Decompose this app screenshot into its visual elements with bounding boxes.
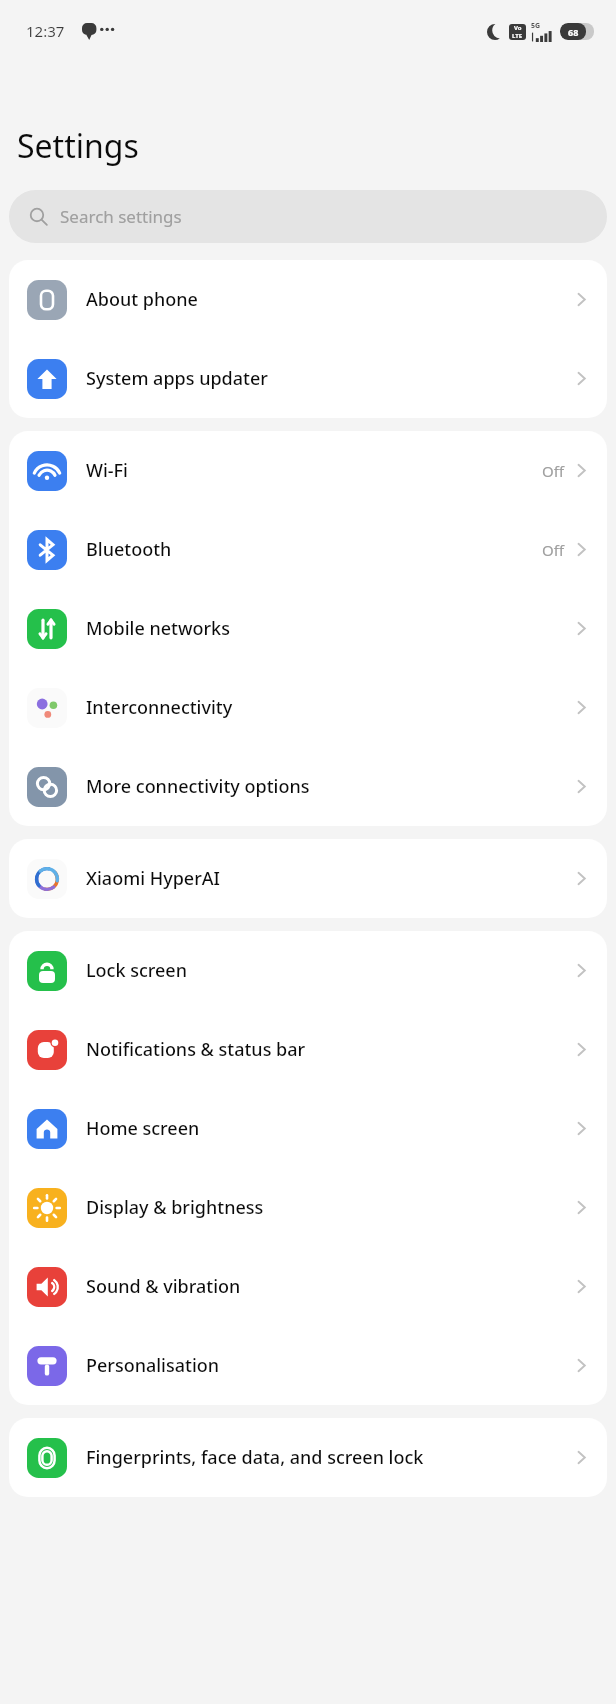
other: More connectivity options — [27, 767, 67, 807]
button[interactable]: Display and brightness — [9, 1168, 607, 1247]
button[interactable]: System apps updater — [9, 339, 607, 418]
staticText: Xiaomi HyperAI — [86, 866, 574, 891]
staticText: Home screen — [86, 1116, 574, 1141]
staticText: Bluetooth — [86, 537, 542, 562]
button[interactable]: About phone — [9, 260, 607, 339]
staticText: Settings — [17, 124, 139, 168]
button[interactable]: Lock screen — [9, 931, 607, 1010]
button[interactable]: Xiaomi HyperAI — [9, 839, 607, 918]
staticText: Lock screen — [86, 958, 574, 983]
staticText: Interconnectivity — [86, 695, 574, 720]
staticText: 5G — [531, 21, 541, 31]
staticText: System apps updater — [86, 366, 574, 391]
button[interactable]: More connectivity options — [9, 747, 607, 826]
other: Personalisation — [27, 1346, 67, 1386]
staticText: Search settings — [60, 205, 182, 228]
other: Bluetooth — [27, 530, 67, 570]
staticText: Mobile networks — [86, 616, 574, 641]
button[interactable]: Bluetooth — [9, 510, 607, 589]
other: Display and brightness — [27, 1188, 67, 1228]
other: About phone — [27, 280, 67, 320]
button[interactable]: Interconnectivity — [9, 668, 607, 747]
staticText: LTE — [512, 32, 523, 40]
staticText: Off — [542, 461, 565, 481]
staticText: About phone — [86, 287, 574, 312]
staticText: Off — [542, 540, 565, 560]
button[interactable]: Mobile networks — [9, 589, 607, 668]
button[interactable]: Wi-Fi — [9, 431, 607, 510]
staticText: Wi-Fi — [86, 458, 542, 483]
other: Mobile networks — [27, 609, 67, 649]
staticText: Fingerprints, face data, and screen lock — [86, 1445, 574, 1470]
staticText: More connectivity options — [86, 774, 574, 799]
button[interactable]: Search settings — [9, 190, 607, 243]
other: Wi-Fi — [27, 451, 67, 491]
staticText: Sound & vibration — [86, 1274, 574, 1299]
other: Interconnectivity — [27, 688, 67, 728]
staticText: Notifications & status bar — [86, 1037, 574, 1062]
staticText: 68 — [568, 26, 579, 38]
staticText: 12:37 — [26, 21, 65, 41]
other: Fingerprints, face data, and screen lock — [27, 1438, 67, 1478]
staticText: Personalisation — [86, 1353, 574, 1378]
button[interactable]: Notifications and status bar — [9, 1010, 607, 1089]
other: Home screen — [27, 1109, 67, 1149]
other: Notifications and status bar — [27, 1030, 67, 1070]
other: Xiaomi HyperAI — [27, 859, 67, 899]
other: Sound and vibration — [27, 1267, 67, 1307]
button[interactable]: Home screen — [9, 1089, 607, 1168]
staticText: Display & brightness — [86, 1195, 574, 1220]
other: Lock screen — [27, 951, 67, 991]
button[interactable]: Sound and vibration — [9, 1247, 607, 1326]
staticText: Vo — [514, 24, 522, 32]
button[interactable]: Fingerprints, face data, and screen lock — [9, 1418, 607, 1497]
other: System apps updater — [27, 359, 67, 399]
button[interactable]: Personalisation — [9, 1326, 607, 1405]
